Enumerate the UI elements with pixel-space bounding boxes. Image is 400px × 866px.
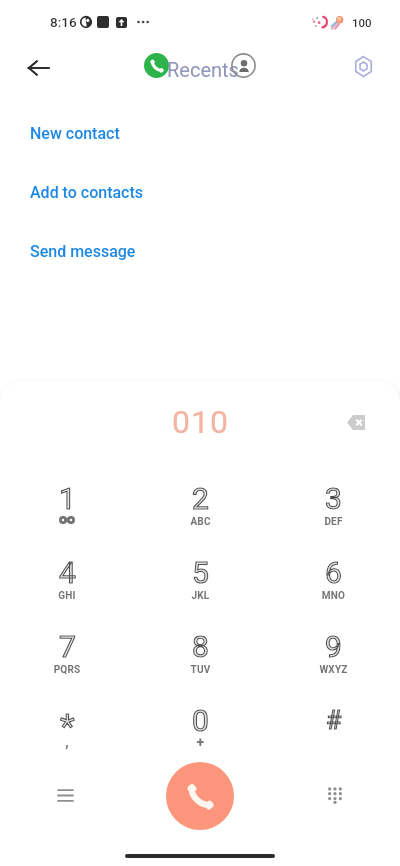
staticText: 3 (325, 481, 342, 516)
button[interactable]: Back (17, 47, 59, 89)
button[interactable]: Menu (46, 776, 84, 814)
staticText: 0 (192, 703, 209, 738)
button[interactable]: Add to contacts (0, 163, 400, 222)
staticText: * (60, 706, 75, 746)
staticText: 4 (59, 555, 76, 590)
staticText: 8 (192, 629, 209, 664)
staticText: 1 (59, 481, 76, 516)
button[interactable]: Dialpad (316, 776, 354, 814)
button[interactable]: # (267, 697, 400, 771)
staticText: JKL (134, 590, 267, 602)
staticText: 5 (192, 555, 209, 590)
staticText: Send message (30, 242, 136, 261)
staticText: 2 (192, 481, 209, 516)
button[interactable]: 3 (267, 475, 400, 549)
staticText: 9 (325, 629, 342, 664)
button[interactable]: 2 (134, 475, 267, 549)
staticText: 7 (59, 629, 76, 664)
staticText: 6 (325, 555, 342, 590)
button[interactable]: 8 (134, 623, 267, 697)
staticText: 7 (59, 629, 76, 664)
staticText: PQRS (0, 664, 134, 676)
staticText: ABC (134, 516, 267, 528)
button[interactable]: 6 (267, 549, 400, 623)
staticText: Add to contacts (30, 183, 144, 202)
button[interactable]: 9 (267, 623, 400, 697)
staticText: 8:16 (50, 14, 77, 30)
staticText: , (0, 734, 134, 750)
staticText: 8 (192, 629, 209, 664)
staticText: MNO (267, 590, 400, 602)
staticText: TUV (134, 664, 267, 676)
staticText: 5 (192, 555, 209, 590)
button[interactable]: 0 (134, 697, 267, 771)
staticText: DEF (267, 516, 400, 528)
button[interactable]: Call (166, 762, 234, 830)
button[interactable]: 7 (0, 623, 134, 697)
staticText: 3 (325, 481, 342, 516)
button[interactable]: * (0, 697, 134, 771)
staticText: GHI (0, 590, 134, 602)
staticText: 010 (172, 403, 229, 441)
button[interactable]: 1 (0, 475, 134, 549)
staticText: # (326, 706, 342, 735)
button[interactable]: Settings (342, 45, 384, 87)
staticText: 4 (59, 555, 76, 590)
staticText: + (134, 734, 267, 750)
button[interactable]: Backspace (337, 403, 375, 441)
button[interactable]: New contact (0, 104, 400, 163)
staticText: Recents (167, 58, 239, 81)
staticText: 6 (325, 555, 342, 590)
staticText: # (326, 706, 342, 735)
button[interactable]: 4 (0, 549, 134, 623)
staticText: 0 (192, 703, 209, 738)
staticText: 1 (59, 481, 76, 516)
button[interactable]: Send message (0, 222, 400, 281)
staticText: 9 (325, 629, 342, 664)
button[interactable]: 5 (134, 549, 267, 623)
staticText: * (60, 706, 75, 746)
staticText: WXYZ (267, 664, 400, 676)
staticText: 2 (192, 481, 209, 516)
staticText: New contact (30, 124, 120, 143)
staticText: 100 (352, 16, 372, 29)
